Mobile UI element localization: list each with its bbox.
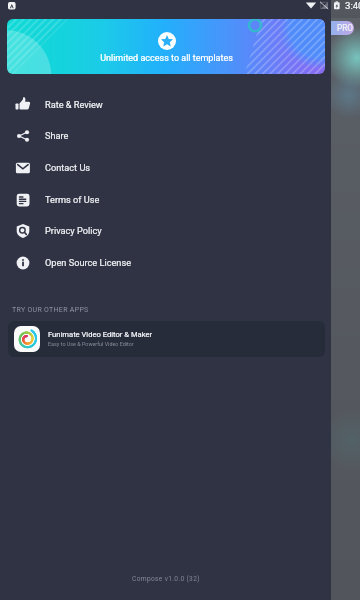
staticText: Compose v1.0.0 (32): [132, 575, 200, 583]
staticText: Unlimited access to all templates: [100, 53, 233, 64]
staticText: Terms of Use: [45, 194, 100, 205]
staticText: Rate & Review: [45, 99, 103, 110]
button[interactable]: Open Source License: [0, 247, 331, 279]
staticText: Funimate Video Editor & Maker: [48, 330, 153, 339]
button[interactable]: Terms of Use: [0, 184, 331, 216]
staticText: Easy to Use & Powerful Video Editor: [48, 341, 134, 347]
button[interactable]: Contact Us: [0, 152, 331, 184]
button[interactable]: Unlimited access to all templates: [7, 19, 325, 74]
staticText: Privacy Policy: [45, 225, 102, 236]
button[interactable]: Share: [0, 120, 331, 152]
staticText: Open Source License: [45, 257, 132, 268]
staticText: Contact Us: [45, 162, 91, 173]
button[interactable]: Upgrade to PRO: [322, 21, 354, 35]
button[interactable]: Rate & Review: [0, 89, 331, 121]
button[interactable]: Privacy Policy: [0, 215, 331, 247]
button[interactable]: Funimate Video Editor & Maker: [8, 321, 325, 357]
staticText: Share: [45, 130, 69, 141]
staticText: 3:40: [345, 0, 360, 11]
staticText: TRY OUR OTHER APPS: [12, 306, 89, 314]
staticText: PRO: [337, 23, 353, 33]
